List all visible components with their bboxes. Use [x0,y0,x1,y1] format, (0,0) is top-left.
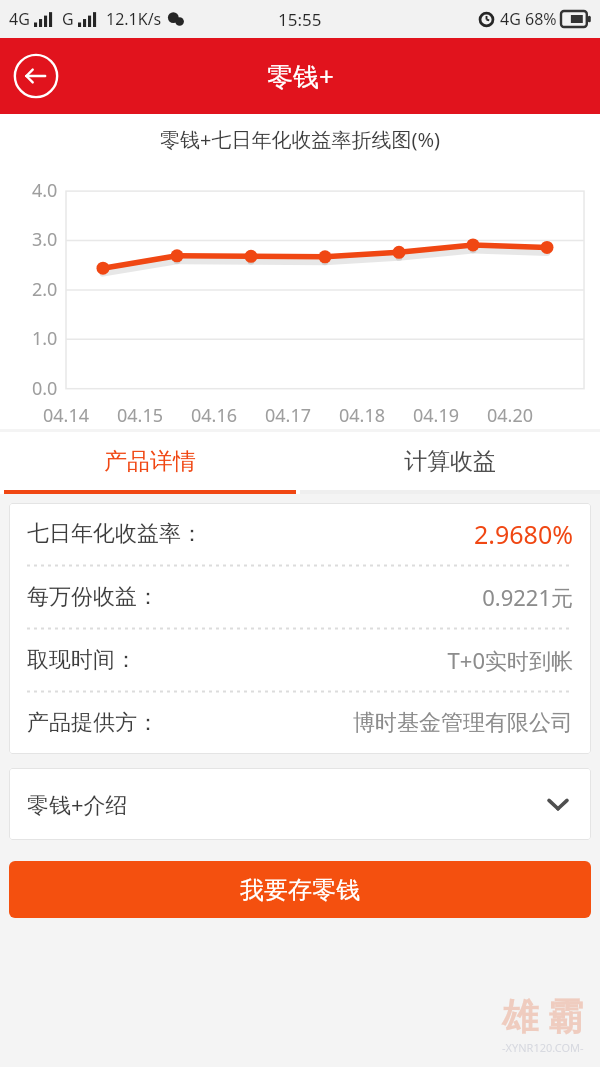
button[interactable]: 计算收益 [300,432,600,490]
button[interactable]: 取现时间： [9,629,591,691]
staticText: 4G [500,8,521,30]
staticText: 每万份收益： [27,583,159,611]
staticText: 0.0 [32,376,58,401]
staticText: 12.1K/s [106,8,162,30]
staticText: 04.14 [43,403,90,428]
staticText: 产品提供方： [27,709,159,737]
staticText: 04.17 [265,403,312,428]
staticText: 零钱+介绍 [27,789,128,819]
staticText: 04.18 [339,403,386,428]
staticText: 博时基金管理有限公司 [353,709,573,737]
staticText: 04.20 [487,403,534,428]
other: Expand [543,789,573,819]
staticText: 计算收益 [404,447,496,476]
staticText: 0.9221元 [482,582,573,612]
button[interactable]: 每万份收益： [9,566,591,628]
staticText: 04.16 [191,403,238,428]
staticText: 雄 霸 [502,991,584,1040]
staticText: -XYNR120.COM- [502,1040,584,1055]
button[interactable]: Back [10,50,62,102]
staticText: 04.19 [413,403,460,428]
staticText: T+0实时到帐 [447,645,573,675]
staticText: 68% [525,8,557,30]
button[interactable]: 我要存零钱 [9,861,591,918]
staticText: 04.15 [117,403,164,428]
staticText: 零钱+七日年化收益率折线图(%) [160,126,441,153]
staticText: 15:55 [278,8,322,31]
staticText: G [62,8,74,30]
staticText: 2.0 [32,277,58,302]
staticText: 2.9680% [474,517,573,551]
staticText: 产品详情 [104,447,196,476]
staticText: 零钱+ [267,58,334,94]
staticText: 3.0 [32,227,58,252]
button[interactable]: 七日年化收益率： [9,503,591,565]
staticText: 4.0 [32,178,58,203]
staticText: 1.0 [32,326,58,351]
button[interactable]: 产品提供方： [9,692,591,754]
staticText: 取现时间： [27,646,137,674]
staticText: 七日年化收益率： [27,520,203,548]
staticText: 我要存零钱 [240,875,360,905]
staticText: 4G [9,8,30,30]
button[interactable]: 零钱+介绍 [9,768,591,840]
button[interactable]: 产品详情 [0,432,300,490]
